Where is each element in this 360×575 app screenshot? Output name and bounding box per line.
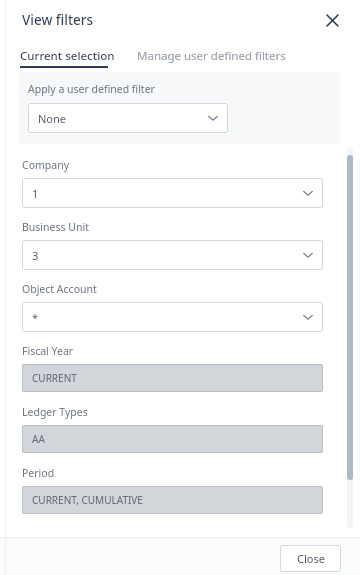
staticText: Fiscal Year [22,344,74,358]
button[interactable]: * [22,302,323,332]
button[interactable]: 3 [22,240,323,270]
button[interactable]: 1 [22,178,323,208]
staticText: * [32,310,302,325]
staticText: Manage user defined filters [137,48,286,64]
staticText: Close [297,551,325,566]
button[interactable]: Current selection [20,44,115,68]
staticText: 3 [32,248,302,263]
staticText: Object Account [22,282,97,296]
button[interactable]: Close dialog [318,6,346,34]
staticText: Ledger Types [22,405,88,419]
staticText: Current selection [20,48,115,64]
staticText: CURRENT [32,371,77,385]
button[interactable]: Manage user defined filters [137,44,286,68]
staticText: Period [22,466,55,480]
staticText: Company [22,158,69,172]
staticText: 1 [32,186,302,201]
button[interactable]: None [28,103,228,133]
staticText: AA [32,432,45,446]
staticText: Business Unit [22,220,89,234]
button[interactable]: Close [280,545,341,572]
staticText: CURRENT, CUMULATIVE [32,493,143,507]
staticText: Apply a user defined filter [28,82,155,96]
staticText: View filters [22,11,94,29]
staticText: None [38,111,207,126]
